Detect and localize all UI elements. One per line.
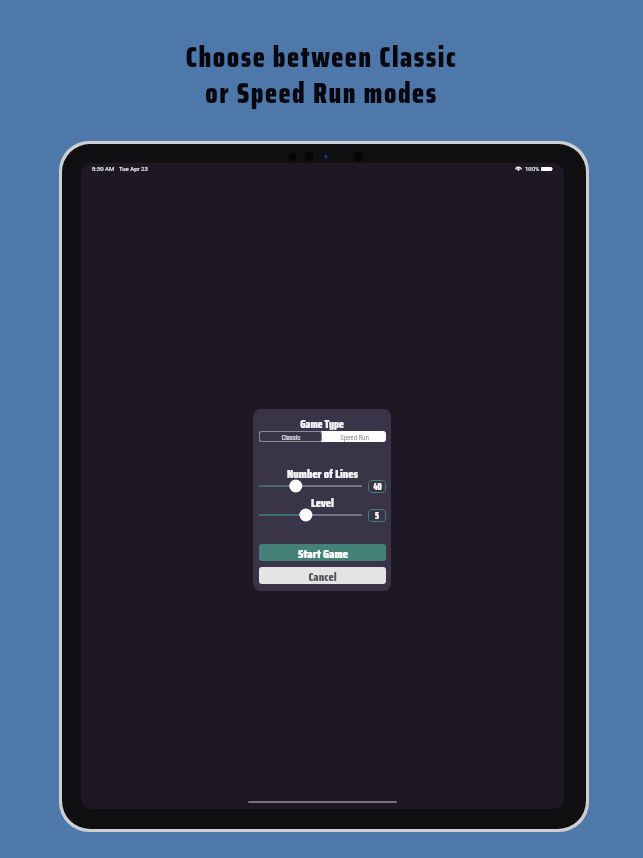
staticText: Speed Run	[340, 433, 369, 441]
staticText: Level	[311, 493, 334, 512]
staticText: Start Game	[298, 544, 348, 561]
other: Wi-Fi signal	[515, 165, 522, 171]
staticText: 8:30 AM	[92, 165, 115, 172]
staticText: 100%	[525, 165, 540, 172]
button[interactable]: Slider	[259, 507, 362, 523]
staticText: Tue Apr 23	[119, 165, 148, 172]
staticText: 40	[373, 480, 382, 493]
staticText: Number of Lines	[287, 464, 358, 483]
button[interactable]: Slider	[259, 478, 362, 494]
button[interactable]: Classic	[259, 431, 322, 442]
staticText: Classic	[281, 433, 301, 441]
staticText: Game Type	[300, 416, 344, 433]
staticText: Choose between Classic or Speed Run mode…	[0, 35, 643, 115]
button[interactable]: Speed Run	[322, 431, 386, 442]
button[interactable]: Cancel	[259, 567, 386, 584]
staticText: 5	[375, 509, 379, 522]
button[interactable]: Start Game	[259, 544, 386, 561]
staticText: Cancel	[308, 567, 337, 584]
